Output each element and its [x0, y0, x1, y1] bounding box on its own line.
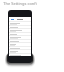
button[interactable] — [9, 46, 31, 49]
button[interactable] — [9, 35, 31, 39]
button[interactable] — [9, 28, 31, 32]
button[interactable] — [9, 32, 31, 35]
button[interactable] — [9, 39, 31, 42]
button[interactable] — [9, 53, 31, 56]
button[interactable] — [9, 25, 31, 28]
button[interactable] — [9, 42, 31, 46]
button[interactable] — [9, 21, 31, 25]
button[interactable]: Back — [10, 17, 14, 21]
button[interactable] — [9, 49, 31, 53]
staticText: The Settings configuration — [3, 1, 37, 6]
